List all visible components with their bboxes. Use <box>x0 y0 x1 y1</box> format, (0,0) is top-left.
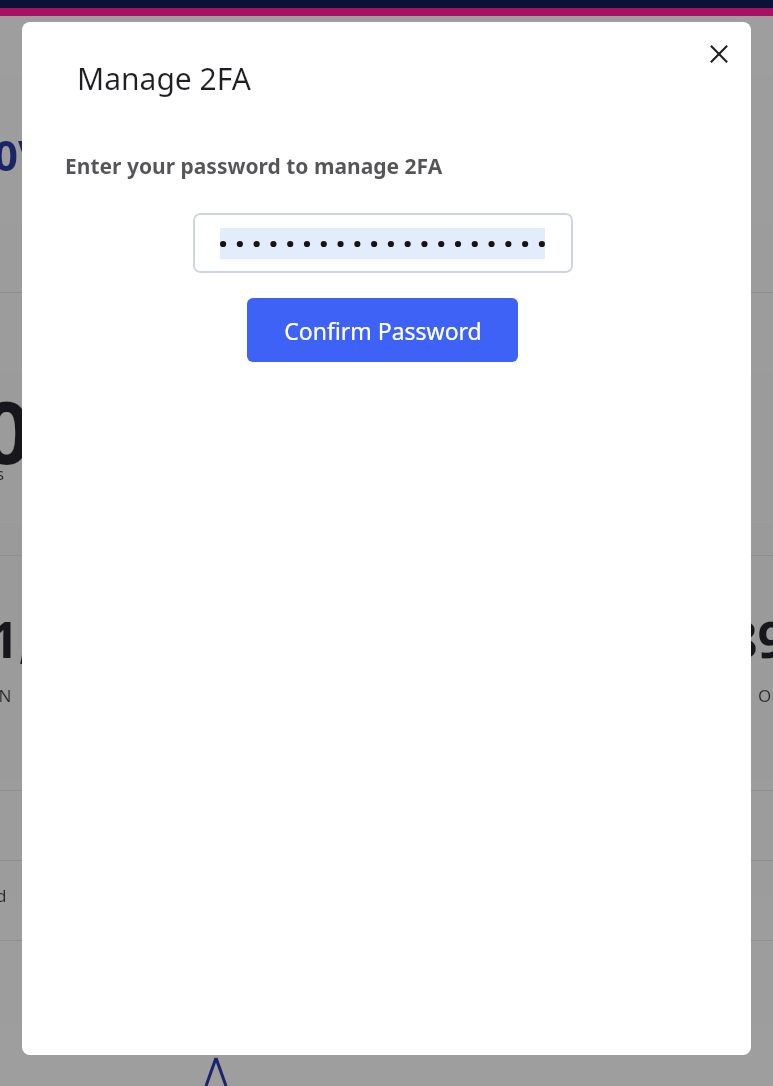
staticText: 0V <box>0 126 46 183</box>
button[interactable]: Close <box>695 30 743 78</box>
staticText: d <box>0 884 7 907</box>
staticText: 1, <box>0 605 33 673</box>
staticText: ON <box>758 684 773 707</box>
staticText: Confirm Password <box>284 315 482 346</box>
staticText: Manage 2FA <box>77 58 251 99</box>
staticText: 0 <box>0 372 32 489</box>
button[interactable]: Confirm Password <box>247 298 518 362</box>
staticText: 89 <box>729 605 773 673</box>
staticText: Enter your password to manage 2FA <box>65 152 443 181</box>
button[interactable] <box>193 213 573 273</box>
staticText: UN <box>0 684 12 707</box>
staticText: s <box>0 462 5 485</box>
